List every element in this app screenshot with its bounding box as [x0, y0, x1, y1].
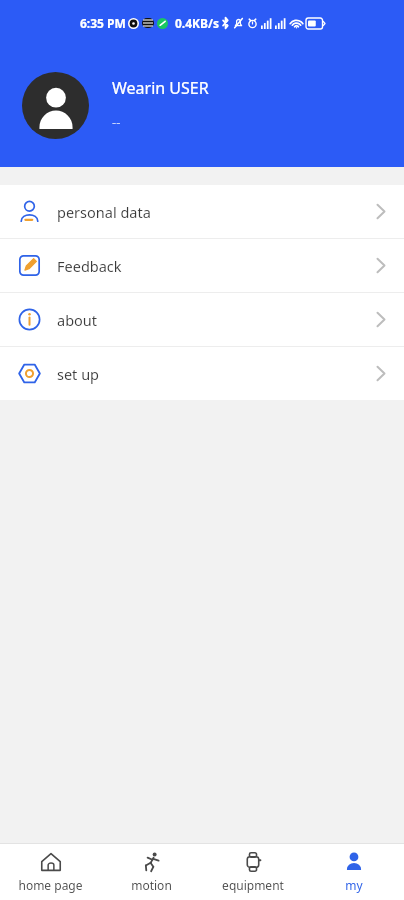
staticText: Wearin USER — [112, 77, 209, 99]
staticText: equipment — [222, 877, 284, 893]
button[interactable]: equipment — [202, 844, 303, 900]
button[interactable]: set up — [0, 347, 404, 400]
staticText: Feedback — [57, 256, 122, 276]
staticText: personal data — [57, 202, 151, 222]
button[interactable]: Wearin USER — [0, 44, 404, 167]
button[interactable]: personal data — [0, 185, 404, 238]
staticText: -- — [112, 113, 121, 131]
button[interactable]: Feedback — [0, 239, 404, 292]
staticText: 0.4KB/s — [175, 15, 220, 31]
staticText: 6:35 PM — [80, 15, 126, 31]
staticText: home page — [18, 877, 83, 893]
staticText: my — [345, 877, 363, 893]
staticText: about — [57, 310, 98, 330]
button[interactable]: my — [303, 844, 404, 900]
staticText: motion — [131, 877, 172, 893]
button[interactable]: home page — [0, 844, 101, 900]
button[interactable]: motion — [101, 844, 202, 900]
staticText: set up — [57, 364, 100, 384]
button[interactable]: about — [0, 293, 404, 346]
